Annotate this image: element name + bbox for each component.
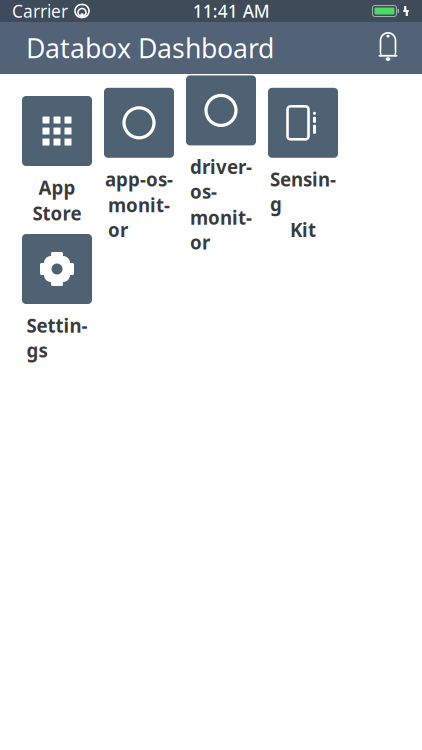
staticText: Sensing xyxy=(270,167,336,216)
staticText: Settings xyxy=(26,313,87,363)
staticText: monitor xyxy=(190,205,252,255)
staticText: 11:41 AM xyxy=(193,0,270,22)
staticText: Store xyxy=(32,201,81,226)
staticText: App xyxy=(38,175,75,200)
staticText: Databox Dashboard xyxy=(26,30,274,66)
staticText: app-os- xyxy=(105,167,173,192)
button[interactable]: Sensing xyxy=(268,96,338,234)
button[interactable]: Settings xyxy=(22,234,92,372)
button[interactable]: driver-os- xyxy=(186,96,256,234)
staticText: monitor xyxy=(108,193,170,242)
staticText: Carrier xyxy=(12,0,68,22)
button[interactable]: app-os- xyxy=(104,96,174,234)
staticText: driver-os- xyxy=(190,154,252,204)
button[interactable]: Notifications xyxy=(366,26,410,70)
staticText: Kit xyxy=(290,217,316,242)
button[interactable]: App xyxy=(22,96,92,234)
